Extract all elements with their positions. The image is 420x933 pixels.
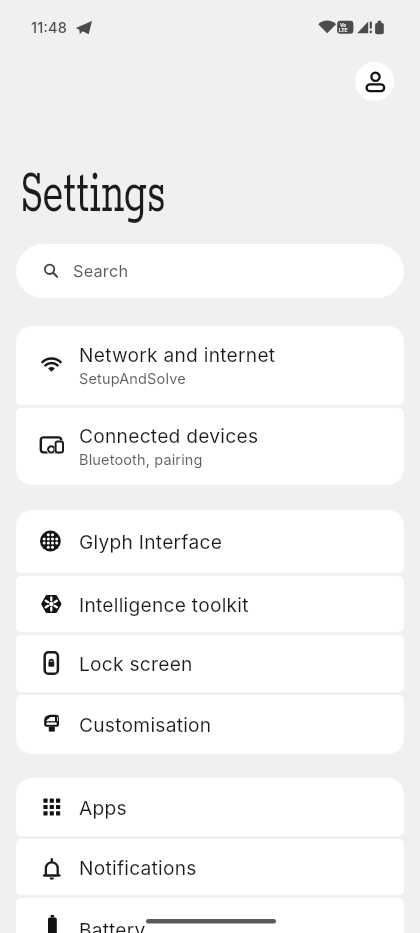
- staticText: LTE: [339, 27, 348, 33]
- button[interactable]: [355, 62, 394, 101]
- staticText: Search: [73, 261, 129, 281]
- button[interactable]: Apps: [16, 778, 404, 836]
- staticText: Network and internet: [79, 343, 276, 366]
- button[interactable]: Glyph Interface: [16, 510, 404, 573]
- staticText: Apps: [79, 796, 127, 819]
- staticText: Settings: [20, 157, 166, 231]
- button[interactable]: Notifications: [16, 839, 404, 895]
- staticText: 11:48: [31, 19, 68, 37]
- staticText: Vo: [340, 22, 347, 28]
- button[interactable]: Network and internet: [16, 326, 404, 405]
- staticText: SetupAndSolve: [79, 370, 186, 388]
- button[interactable]: Lock screen: [16, 635, 404, 692]
- button[interactable]: Connected devices: [16, 408, 404, 485]
- button[interactable]: Search: [16, 244, 404, 298]
- button[interactable]: Battery: [16, 898, 404, 933]
- staticText: Battery: [79, 918, 146, 933]
- staticText: Bluetooth, pairing: [79, 451, 203, 469]
- staticText: Customisation: [79, 713, 212, 736]
- staticText: Notifications: [79, 856, 197, 879]
- staticText: Intelligence toolkit: [79, 593, 249, 616]
- staticText: Lock screen: [79, 652, 193, 675]
- button[interactable]: Customisation: [16, 695, 404, 754]
- button[interactable]: Intelligence toolkit: [16, 576, 404, 632]
- staticText: Connected devices: [79, 424, 259, 447]
- staticText: Glyph Interface: [79, 530, 223, 553]
